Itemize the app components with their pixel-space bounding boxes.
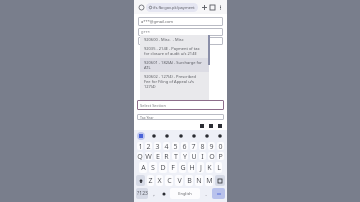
- button[interactable]: Tabs: [208, 3, 216, 11]
- staticText: S: [151, 163, 155, 173]
- staticText: ifs.fbr.gov.pk/payment: [153, 5, 195, 10]
- button[interactable]: Tax Period: [141, 37, 223, 45]
- staticText: 0***: [141, 30, 150, 35]
- button[interactable]: K: [206, 162, 213, 173]
- button[interactable]: E: [154, 152, 161, 160]
- staticText: 8: [200, 142, 205, 150]
- staticText: 0: [218, 142, 223, 150]
- staticText: a***@gmail.com: [141, 19, 174, 24]
- button[interactable]: More options: [216, 3, 224, 11]
- button[interactable]: Q: [137, 152, 143, 160]
- button[interactable]: Voice input: [216, 132, 224, 140]
- button[interactable]: 920602 - 127(4) - Prescribed Fee for Fil…: [144, 74, 205, 89]
- staticText: 5: [173, 142, 178, 150]
- button[interactable]: D: [159, 162, 167, 173]
- button[interactable]: 3: [154, 142, 161, 150]
- staticText: 3: [155, 142, 160, 150]
- button[interactable]: 920601 - 182(A) - Surcharge for ATL: [144, 60, 205, 70]
- button[interactable]: V: [175, 175, 183, 186]
- button[interactable]: Clipboard: [137, 132, 145, 140]
- button[interactable]: 0***: [141, 28, 223, 36]
- button[interactable]: J: [197, 162, 204, 173]
- button[interactable]: 6: [181, 142, 188, 150]
- button[interactable]: Search: [150, 132, 158, 140]
- button[interactable]: Z: [147, 175, 154, 186]
- button[interactable]: ifs.fbr.gov.pk/payment: [149, 3, 195, 12]
- button[interactable]: Address: [215, 121, 224, 130]
- button[interactable]: S: [149, 162, 157, 173]
- button[interactable]: Backspace: [215, 175, 225, 186]
- button[interactable]: 4: [163, 142, 170, 150]
- button[interactable]: P: [217, 152, 224, 160]
- button[interactable]: O: [208, 152, 215, 160]
- button[interactable]: Shift: [136, 175, 145, 186]
- button[interactable]: Clipboard: [177, 132, 185, 140]
- button[interactable]: GIF: [163, 132, 171, 140]
- button[interactable]: 8: [199, 142, 206, 150]
- staticText: Y: [183, 152, 187, 160]
- button[interactable]: English: [170, 188, 200, 199]
- button[interactable]: Add: [200, 3, 208, 11]
- button[interactable]: C: [165, 175, 173, 186]
- button[interactable]: 920600 - Misc. - Misc: [144, 37, 205, 42]
- staticText: Tax Period: [141, 39, 161, 44]
- staticText: Tax Year: [140, 115, 154, 120]
- staticText: 9: [209, 142, 214, 150]
- button[interactable]: W: [145, 152, 152, 160]
- button[interactable]: 1: [137, 142, 143, 150]
- staticText: A: [141, 163, 146, 173]
- staticText: .: [205, 190, 207, 198]
- button[interactable]: Page info: [137, 3, 145, 11]
- staticText: Select Section: [140, 103, 166, 108]
- button[interactable]: 5: [172, 142, 179, 150]
- button[interactable]: Enter: [212, 188, 225, 199]
- button[interactable]: Tax Year: [140, 114, 224, 120]
- button[interactable]: T: [172, 152, 179, 160]
- button[interactable]: G: [179, 162, 186, 173]
- button[interactable]: Settings: [160, 188, 168, 199]
- staticText: O: [209, 152, 215, 160]
- staticText: 920602 - 127(4) - Prescribed Fee for Fil…: [144, 74, 196, 89]
- button[interactable]: A: [139, 162, 147, 173]
- staticText: N: [196, 176, 202, 186]
- staticText: P: [218, 152, 223, 160]
- staticText: U: [191, 152, 197, 160]
- button[interactable]: 9: [208, 142, 215, 150]
- button[interactable]: F: [169, 162, 177, 173]
- button[interactable]: Password: [197, 121, 206, 130]
- button[interactable]: U: [190, 152, 197, 160]
- button[interactable]: H: [188, 162, 195, 173]
- button[interactable]: ?123: [136, 188, 148, 199]
- button[interactable]: R: [163, 152, 170, 160]
- button[interactable]: Select Section: [140, 100, 224, 110]
- button[interactable]: 0: [217, 142, 224, 150]
- staticText: T: [174, 152, 178, 160]
- button[interactable]: N: [195, 175, 203, 186]
- button[interactable]: M: [205, 175, 213, 186]
- staticText: M: [206, 176, 213, 186]
- button[interactable]: Y: [181, 152, 188, 160]
- button[interactable]: Card: [206, 121, 215, 130]
- button[interactable]: .: [202, 188, 210, 199]
- button[interactable]: 92035 - 214E - Payment of tax for closur…: [144, 46, 205, 56]
- staticText: 6: [182, 142, 187, 150]
- staticText: W: [145, 152, 152, 160]
- staticText: 7: [191, 142, 196, 150]
- button[interactable]: a***@gmail.com: [141, 17, 223, 26]
- staticText: L: [217, 163, 221, 173]
- staticText: 4: [164, 142, 169, 150]
- button[interactable]: L: [215, 162, 222, 173]
- staticText: 1: [138, 142, 143, 150]
- staticText: E: [156, 152, 160, 160]
- button[interactable]: 7: [190, 142, 197, 150]
- button[interactable]: 2: [145, 142, 152, 150]
- button[interactable]: B: [185, 175, 193, 186]
- button[interactable]: Emoji: [190, 132, 198, 140]
- staticText: J: [200, 163, 202, 173]
- button[interactable]: I: [199, 152, 206, 160]
- button[interactable]: Sticker: [203, 132, 211, 140]
- button[interactable]: ,: [150, 188, 158, 199]
- button[interactable]: X: [156, 175, 163, 186]
- staticText: K: [207, 163, 212, 173]
- staticText: F: [171, 163, 175, 173]
